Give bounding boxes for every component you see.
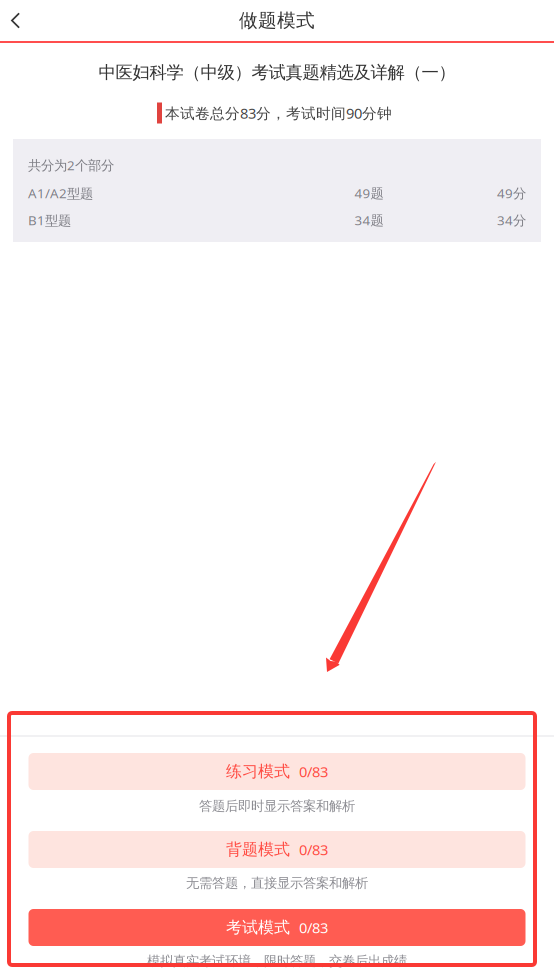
button[interactable]: 背题模式	[28, 831, 525, 868]
staticText: 34分	[497, 211, 526, 229]
staticText: 0/83	[299, 840, 328, 859]
staticText: 0/83	[299, 918, 328, 937]
staticText: 共分为2个部分	[28, 156, 114, 174]
button[interactable]: 考试模式	[28, 909, 525, 946]
button[interactable]: 练习模式	[28, 753, 525, 790]
staticText: 无需答题，直接显示答案和解析	[186, 875, 368, 891]
staticText: B1型题	[28, 211, 71, 229]
staticText: 49分	[497, 184, 526, 202]
staticText: 背题模式	[226, 840, 290, 859]
staticText: 0/83	[299, 762, 328, 781]
staticText: A1/A2型题	[28, 184, 93, 202]
staticText: 做题模式	[239, 9, 315, 32]
staticText: 49题	[354, 184, 383, 202]
staticText: 答题后即时显示答案和解析	[199, 798, 355, 814]
staticText: 34题	[354, 211, 383, 229]
staticText: 模拟真实考试环境，限时答题，交卷后出成绩	[147, 953, 407, 969]
button[interactable]: 返回	[0, 0, 31, 41]
staticText: 中医妇科学（中级）考试真题精选及详解（一）	[98, 62, 455, 83]
staticText: 本试卷总分83分，考试时间90分钟	[165, 103, 392, 123]
staticText: 练习模式	[226, 762, 290, 781]
staticText: 考试模式	[226, 918, 290, 937]
